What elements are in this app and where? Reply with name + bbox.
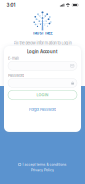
button[interactable]: LOGIN — [8, 90, 77, 99]
staticText: Forgot Password — [29, 107, 56, 112]
staticText: Privacy Policy — [31, 168, 54, 172]
button[interactable]: I accept terms & conditions — [19, 162, 66, 167]
staticText: Fill the below information to Log in — [13, 40, 71, 45]
staticText: E-mail — [8, 56, 19, 61]
staticText: Password — [8, 73, 24, 78]
button[interactable]: Privacy Policy — [31, 168, 54, 172]
button[interactable]: Forgot Password — [29, 106, 56, 113]
staticText: TRUST TREE — [32, 31, 52, 35]
staticText: LOGIN — [36, 93, 48, 97]
staticText: I accept terms & conditions — [22, 162, 66, 167]
staticText: 3:01 — [6, 2, 15, 8]
staticText: Login Account — [27, 49, 58, 54]
